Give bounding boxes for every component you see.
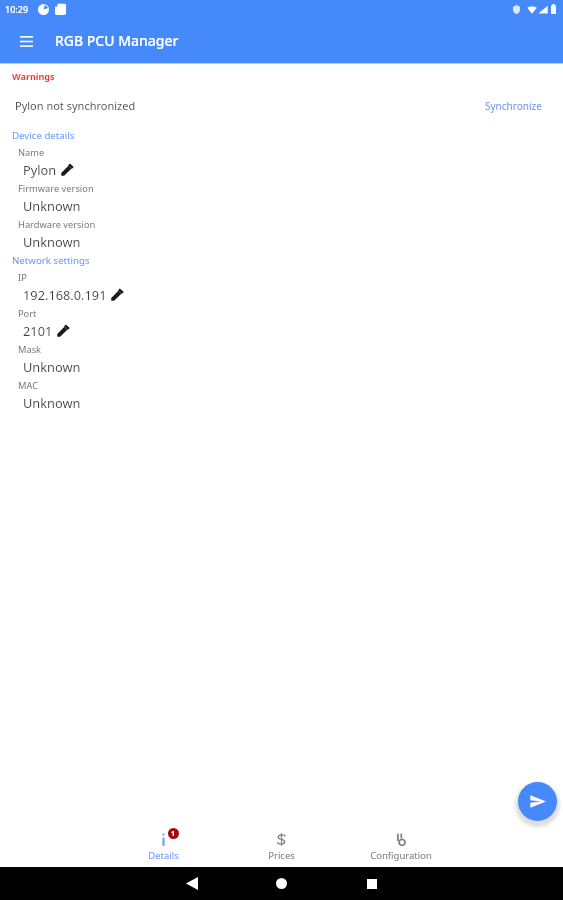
- staticText: Firmware version: [18, 182, 94, 195]
- staticText: Details: [148, 849, 179, 862]
- staticText: 192.168.0.191: [23, 286, 107, 303]
- staticText: 1: [171, 829, 176, 839]
- button[interactable]: MAC: [0, 375, 563, 411]
- staticText: Unknown: [23, 197, 81, 214]
- staticText: Configuration: [370, 849, 432, 862]
- button[interactable]: Menu: [12, 27, 40, 55]
- button[interactable]: Configuration: [341, 828, 460, 867]
- button[interactable]: Pylon not synchronized: [0, 98, 563, 113]
- staticText: 2101: [23, 322, 53, 339]
- staticText: Pylon not synchronized: [15, 98, 136, 113]
- staticText: Pylon: [23, 161, 57, 178]
- staticText: Unknown: [23, 394, 81, 411]
- staticText: Mask: [18, 343, 42, 356]
- staticText: Warnings: [12, 70, 55, 82]
- staticText: RGB PCU Manager: [55, 31, 179, 50]
- staticText: Name: [18, 146, 45, 159]
- button[interactable]: Port: [0, 303, 563, 339]
- staticText: Unknown: [23, 358, 81, 375]
- staticText: Hardware version: [18, 218, 96, 231]
- button[interactable]: Back: [176, 868, 207, 899]
- button[interactable]: Mask: [0, 339, 563, 375]
- staticText: IP: [18, 271, 27, 284]
- button[interactable]: Send: [518, 782, 557, 821]
- button[interactable]: Firmware version: [0, 178, 563, 214]
- button[interactable]: IP: [0, 267, 563, 303]
- button[interactable]: Hardware version: [0, 214, 563, 250]
- button[interactable]: 1: [104, 828, 222, 867]
- staticText: MAC: [18, 379, 39, 392]
- staticText: 10:29: [5, 3, 29, 15]
- staticText: Prices: [268, 849, 295, 862]
- staticText: Device details: [12, 129, 75, 142]
- button[interactable]: Name: [0, 142, 563, 178]
- staticText: Port: [18, 307, 37, 320]
- button[interactable]: Home: [266, 868, 297, 899]
- staticText: Unknown: [23, 233, 81, 250]
- button[interactable]: Prices: [222, 828, 341, 867]
- staticText: Network settings: [12, 254, 90, 267]
- staticText: Synchronize: [485, 99, 542, 113]
- button[interactable]: Recents: [356, 868, 387, 899]
